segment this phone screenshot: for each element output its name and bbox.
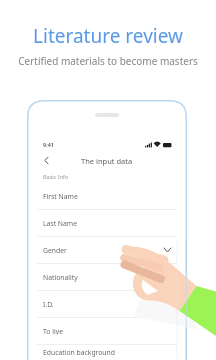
staticText: I.D.: [43, 300, 54, 309]
button[interactable]: Education background: [37, 345, 177, 360]
staticText: Nationality: [43, 273, 78, 282]
staticText: Last Name: [43, 219, 78, 228]
button[interactable]: I.D.: [37, 291, 177, 318]
staticText: To live: [43, 327, 63, 336]
staticText: Gender: [43, 246, 67, 255]
staticText: 9:41: [43, 141, 54, 148]
button[interactable]: Back: [41, 155, 52, 166]
staticText: First Name: [43, 192, 78, 201]
staticText: Education background: [43, 348, 115, 357]
staticText: Certified materials to become masters: [18, 54, 198, 68]
staticText: Literature review: [33, 23, 183, 49]
staticText: Basic Info: [43, 173, 69, 180]
button[interactable]: Nationality: [37, 264, 177, 291]
button[interactable]: First Name: [37, 183, 177, 210]
button[interactable]: Last Name: [37, 210, 177, 237]
button[interactable]: Gender: [37, 237, 177, 264]
button[interactable]: To live: [37, 318, 177, 345]
staticText: The input data: [81, 156, 133, 166]
